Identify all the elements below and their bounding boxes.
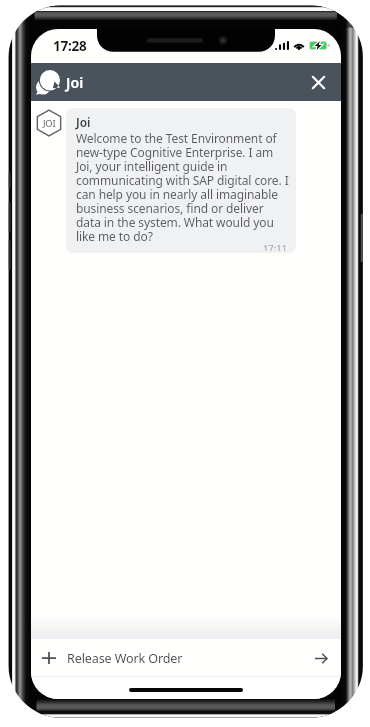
button[interactable]: Send [308,645,334,671]
staticText: 17:28 [53,36,87,55]
staticText: Joi [66,73,84,92]
staticText: JOI [43,117,56,130]
staticText: Joi [76,114,91,130]
staticText: Release Work Order [67,650,183,667]
staticText: Welcome to the Test Environment of new-t… [76,130,290,244]
button[interactable]: Release Work Order [31,639,341,676]
staticText: 17:11 [76,242,287,251]
button[interactable]: Close [303,67,333,97]
